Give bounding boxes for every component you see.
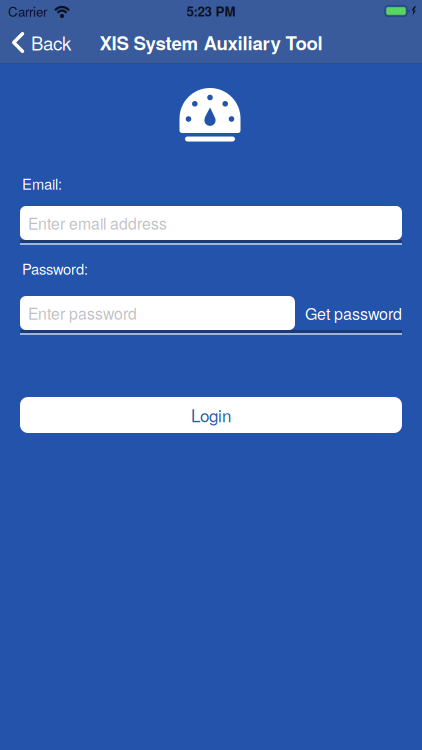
staticText: XIS System Auxiliary Tool [99, 29, 322, 56]
button[interactable]: Back [0, 29, 71, 56]
button[interactable]: Get password [305, 301, 402, 324]
staticText: Back [31, 29, 71, 56]
button[interactable]: Enter password [20, 296, 295, 330]
button[interactable]: Login [20, 397, 402, 433]
button[interactable]: Enter email address [20, 206, 402, 240]
staticText: Carrier [8, 1, 47, 21]
staticText: Get password [305, 301, 402, 324]
staticText: 5:23 PM [186, 1, 235, 21]
staticText: Password: [22, 258, 88, 279]
staticText: Enter email address [28, 212, 167, 234]
staticText: Login [191, 403, 231, 427]
staticText: Enter password [28, 302, 137, 324]
staticText: Email: [22, 173, 62, 194]
